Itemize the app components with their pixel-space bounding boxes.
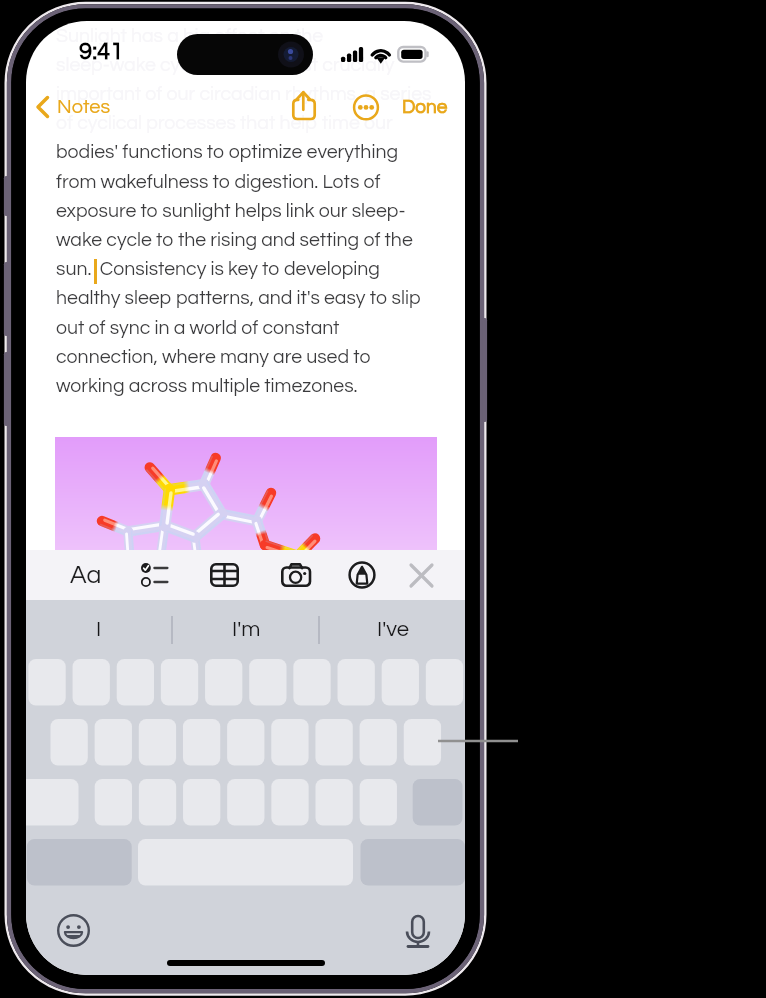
button[interactable]: Notes [34,84,111,130]
button[interactable]: Share [282,87,326,131]
staticText: sun. Consistency is key to developing [56,259,380,279]
button[interactable]: I've [343,600,443,659]
staticText: I've [377,618,410,641]
button[interactable]: I [49,600,149,659]
staticText: out of sync in a world of constant [56,318,340,338]
staticText: sleep-wake cycle; it's the most cruciall… [56,55,395,75]
button[interactable]: Done [394,84,456,130]
staticText: 9:41 [79,39,124,64]
staticText: Aa [70,562,102,588]
staticText: exposure to sunlight helps link our slee… [56,201,406,221]
button[interactable]: I'm [196,600,296,659]
staticText: working across multiple timezones. [56,376,358,396]
button[interactable]: Emoji [53,910,93,950]
staticText: Notes [57,97,111,118]
staticText: from wakefulness to digestion. Lots of [56,172,381,192]
staticText: wake cycle to the rising and setting of … [56,230,413,250]
staticText: connection, where many are used to [56,347,371,367]
button[interactable]: More options [343,84,389,130]
button[interactable]: Camera [269,550,323,600]
button[interactable]: Table [197,550,251,600]
button[interactable]: Checklist [127,550,181,600]
staticText: I [96,618,102,641]
staticText: Done [402,97,448,117]
staticText: of cyclical processes that help time our [56,113,393,133]
staticText: Sunlight has a big effect on the [56,26,324,46]
staticText: healthy sleep patterns, and it's easy to… [56,288,421,308]
button[interactable]: Markup [335,550,389,600]
button[interactable]: Close keyboard [394,550,448,600]
staticText: I'm [232,618,261,641]
button[interactable]: Text format [59,550,113,600]
staticText: important of our circadian rhythms, a se… [56,84,432,104]
button[interactable]: Dictate [398,909,438,949]
staticText: bodies' functions to optimize everything [56,142,399,162]
